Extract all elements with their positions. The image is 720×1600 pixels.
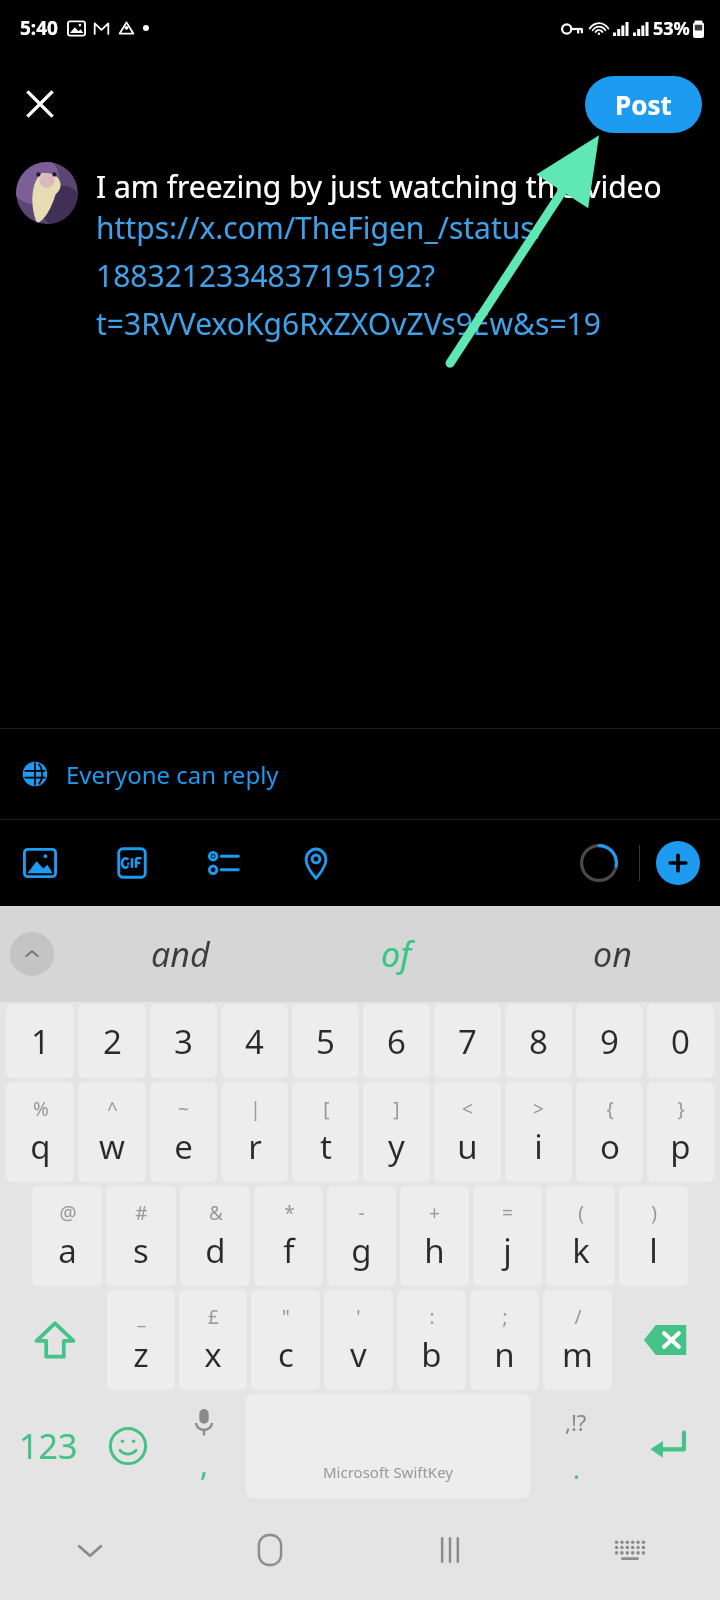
button[interactable]: " (251, 1290, 320, 1390)
staticText: & (209, 1200, 223, 1226)
button[interactable]: 8 (505, 1004, 572, 1078)
button[interactable]: : (397, 1290, 466, 1390)
button[interactable]: Space (246, 1394, 530, 1498)
staticText: } (677, 1096, 685, 1122)
staticText: " (282, 1304, 290, 1330)
staticText: a (58, 1228, 77, 1273)
button[interactable]: @ (32, 1186, 102, 1286)
button[interactable]: Add location (290, 837, 342, 889)
staticText: Everyone can reply (66, 758, 279, 791)
staticText: Post (615, 87, 672, 122)
staticText: [ (323, 1096, 330, 1122)
button[interactable]: ( (546, 1186, 615, 1286)
button[interactable]: ) (619, 1186, 688, 1286)
button[interactable]: Period and punctuation (532, 1394, 620, 1498)
button[interactable]: 123 (4, 1394, 92, 1498)
button[interactable]: 7 (434, 1004, 501, 1078)
button[interactable]: [ (292, 1082, 359, 1182)
button[interactable]: Add photo (14, 837, 66, 889)
staticText: * (284, 1200, 295, 1226)
button[interactable]: Switch keyboard (540, 1500, 720, 1600)
button[interactable]: ~ (150, 1082, 217, 1182)
button[interactable]: Enter (620, 1394, 716, 1498)
button[interactable]: Close (12, 76, 68, 132)
button[interactable]: ; (470, 1290, 539, 1390)
staticText: n (494, 1332, 515, 1377)
button[interactable]: Backspace (616, 1290, 714, 1390)
button[interactable]: & (180, 1186, 250, 1286)
staticText: ; (502, 1304, 508, 1330)
staticText: r (248, 1124, 262, 1169)
button[interactable]: # (106, 1186, 176, 1286)
button[interactable]: * (254, 1186, 323, 1286)
staticText: = (502, 1200, 513, 1226)
staticText: % (33, 1096, 49, 1122)
button[interactable]: 5 (292, 1004, 359, 1078)
staticText: 6 (387, 1019, 406, 1064)
staticText: 8 (529, 1019, 548, 1064)
staticText: - (358, 1200, 365, 1226)
staticText: w (99, 1124, 125, 1169)
button[interactable]: https://x.com/TheFigen_/status/188321233… (96, 207, 704, 343)
button[interactable]: % (6, 1082, 74, 1182)
staticText: 9 (600, 1019, 619, 1064)
button[interactable]: Add post (656, 841, 700, 885)
staticText: 2 (103, 1019, 122, 1064)
button[interactable]: _ (107, 1290, 175, 1390)
staticText: ) (651, 1200, 657, 1226)
button[interactable]: | (221, 1082, 288, 1182)
button[interactable]: £ (179, 1290, 247, 1390)
button[interactable]: 0 (647, 1004, 714, 1078)
button[interactable]: 1 (6, 1004, 74, 1078)
button[interactable]: ^ (78, 1082, 146, 1182)
button[interactable]: Everyone can reply (0, 729, 720, 819)
staticText: 0 (671, 1019, 690, 1064)
button[interactable]: Profile photo (16, 162, 78, 224)
staticText: k (572, 1228, 590, 1273)
staticText: 7 (458, 1019, 477, 1064)
button[interactable]: on (504, 906, 720, 1002)
button[interactable]: ' (324, 1290, 393, 1390)
staticText: ' (356, 1304, 361, 1330)
button[interactable]: Recent apps (360, 1500, 540, 1600)
button[interactable]: = (473, 1186, 542, 1286)
button[interactable]: 2 (78, 1004, 146, 1078)
staticText: i (534, 1124, 543, 1169)
button[interactable]: ] (363, 1082, 430, 1182)
button[interactable]: Expand suggestions (10, 932, 54, 976)
staticText: 4 (245, 1019, 264, 1064)
button[interactable]: } (647, 1082, 714, 1182)
button[interactable]: { (576, 1082, 643, 1182)
staticText: j (503, 1228, 512, 1273)
button[interactable]: 3 (150, 1004, 217, 1078)
staticText: { (606, 1096, 614, 1122)
button[interactable]: 9 (576, 1004, 643, 1078)
button[interactable]: of (288, 906, 504, 1002)
staticText: . (573, 1451, 580, 1486)
button[interactable]: Home (180, 1500, 360, 1600)
button[interactable]: Character count (573, 837, 625, 889)
staticText: s (133, 1228, 149, 1273)
button[interactable]: - (327, 1186, 396, 1286)
button[interactable]: + (400, 1186, 469, 1286)
button[interactable]: < (434, 1082, 501, 1182)
button[interactable]: Add GIF (106, 837, 158, 889)
staticText: and (151, 931, 210, 977)
staticText: d (205, 1228, 226, 1273)
button[interactable]: Shift (6, 1290, 103, 1390)
button[interactable]: Voice input and comma (164, 1394, 244, 1498)
button[interactable]: Post (585, 76, 702, 133)
button[interactable]: / (543, 1290, 612, 1390)
button[interactable]: Add poll (198, 837, 250, 889)
button[interactable]: 6 (363, 1004, 430, 1078)
staticText: _ (137, 1304, 146, 1330)
button[interactable]: 4 (221, 1004, 288, 1078)
button[interactable]: Emoji (92, 1394, 164, 1498)
button[interactable]: > (505, 1082, 572, 1182)
button[interactable]: and (72, 906, 288, 1002)
staticText: # (135, 1200, 148, 1226)
staticText: y (388, 1124, 405, 1169)
button[interactable]: Hide keyboard (0, 1500, 180, 1600)
staticText: 123 (19, 1423, 78, 1469)
staticText: £ (208, 1304, 219, 1330)
